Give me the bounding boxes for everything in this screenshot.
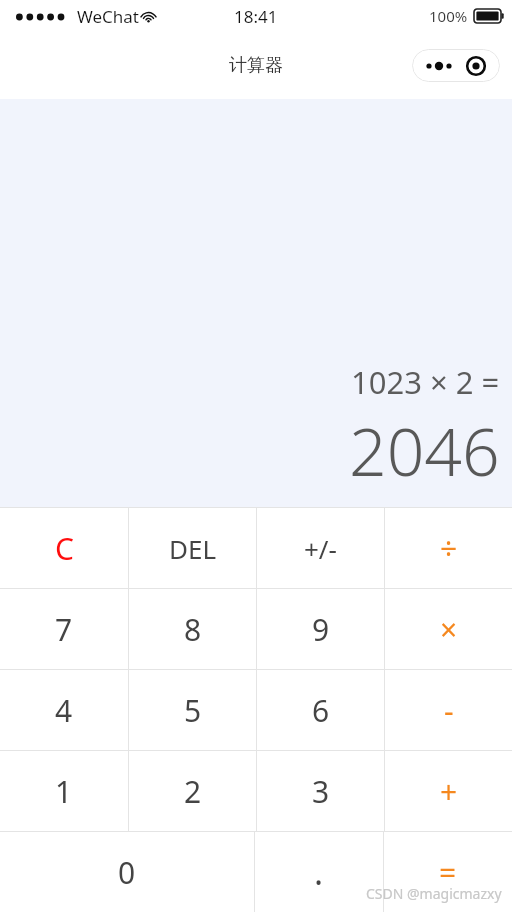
staticText: 计算器 — [229, 54, 283, 77]
staticText: C — [55, 528, 74, 569]
staticText: 9 — [312, 609, 330, 650]
staticText: WeChat — [77, 5, 139, 28]
staticText: 8 — [184, 609, 202, 650]
staticText: = — [439, 852, 457, 893]
staticText: 2 — [184, 771, 202, 812]
staticText: 0 — [118, 852, 136, 893]
button[interactable]: = — [384, 832, 512, 912]
staticText: 5 — [184, 690, 202, 731]
button[interactable]: 0 — [0, 832, 254, 912]
button[interactable]: 4 — [0, 670, 128, 750]
button[interactable]: × — [385, 589, 512, 669]
staticText: 18:41 — [234, 5, 278, 28]
button[interactable]: C — [0, 508, 128, 588]
button[interactable]: - — [385, 670, 512, 750]
button[interactable]: + — [385, 751, 512, 831]
staticText: +/- — [304, 531, 337, 566]
staticText: 6 — [312, 690, 330, 731]
staticText: . — [314, 849, 324, 895]
staticText: CSDN @magicmazxy — [366, 884, 502, 903]
staticText: 2046 — [349, 405, 500, 495]
staticText: 1023 × 2 = — [351, 361, 500, 403]
staticText: 3 — [312, 771, 330, 812]
button[interactable]: Menu and close — [412, 49, 500, 82]
button[interactable]: 5 — [129, 670, 256, 750]
staticText: - — [444, 690, 454, 731]
staticText: 4 — [55, 690, 73, 731]
button[interactable]: 8 — [129, 589, 256, 669]
other: Close — [466, 56, 486, 76]
button[interactable]: +/- — [257, 508, 384, 588]
button[interactable]: . — [255, 832, 383, 912]
button[interactable]: 6 — [257, 670, 384, 750]
button[interactable]: 7 — [0, 589, 128, 669]
button[interactable]: 3 — [257, 751, 384, 831]
button[interactable]: ÷ — [385, 508, 512, 588]
staticText: 7 — [55, 609, 73, 650]
button[interactable]: 2 — [129, 751, 256, 831]
staticText: DEL — [169, 531, 217, 566]
staticText: 1 — [55, 771, 73, 812]
button[interactable]: 1 — [0, 751, 128, 831]
staticText: × — [440, 609, 458, 650]
button[interactable]: DEL — [129, 508, 256, 588]
staticText: + — [440, 771, 458, 812]
button[interactable]: 9 — [257, 589, 384, 669]
staticText: 100% — [429, 6, 468, 26]
other: More — [426, 61, 452, 71]
staticText: ÷ — [440, 528, 458, 569]
